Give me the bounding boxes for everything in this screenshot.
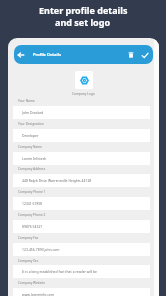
staticText: It is a long established fact that a rea… <box>22 269 98 274</box>
staticText: Company Phone 2 <box>18 213 46 217</box>
staticText: Company Tax <box>18 259 39 263</box>
staticText: Profile Details <box>33 52 61 57</box>
button[interactable]: Lorem Infotech <box>13 152 150 165</box>
staticText: Company Phone 1 <box>18 190 46 194</box>
button[interactable]: Save <box>138 45 152 64</box>
staticText: 123-456-7890 john.com <box>22 247 60 252</box>
button[interactable]: Set company logo <box>75 71 93 89</box>
staticText: Your Name <box>18 99 35 103</box>
staticText: Lorem Infotech <box>22 156 47 161</box>
staticText: Your Designation <box>18 122 44 126</box>
staticText: John Dracked <box>22 110 44 115</box>
button[interactable]: Back <box>14 45 27 64</box>
button[interactable]: 123-456-7890 john.com <box>13 243 150 256</box>
staticText: 12341 67890 <box>22 201 43 206</box>
staticText: Company Address <box>18 167 46 171</box>
staticText: www.loreminfo.com <box>22 292 55 296</box>
staticText: Company Website <box>18 281 46 285</box>
button[interactable]: 12341 67890 <box>13 197 150 210</box>
button[interactable]: 89876 54321 <box>13 220 150 233</box>
staticText: Developer <box>22 133 39 138</box>
staticText: 89876 54321 <box>22 224 43 229</box>
button[interactable]: www.loreminfo.com <box>13 288 150 296</box>
button[interactable]: It is a long established fact that a rea… <box>13 265 150 278</box>
staticText: Enter profile details <box>39 4 128 16</box>
staticText: 448 Ralph Drive Warrensville Heights 441… <box>22 178 92 183</box>
staticText: Company Logo <box>72 92 95 96</box>
button[interactable]: Developer <box>13 129 150 142</box>
button[interactable]: 448 Ralph Drive Warrensville Heights 441… <box>13 174 150 187</box>
button[interactable]: John Dracked <box>13 106 150 119</box>
button[interactable]: Delete <box>124 45 138 64</box>
staticText: Company Fax <box>18 236 39 240</box>
staticText: Company Name <box>18 145 43 149</box>
staticText: and set logo <box>55 16 111 28</box>
